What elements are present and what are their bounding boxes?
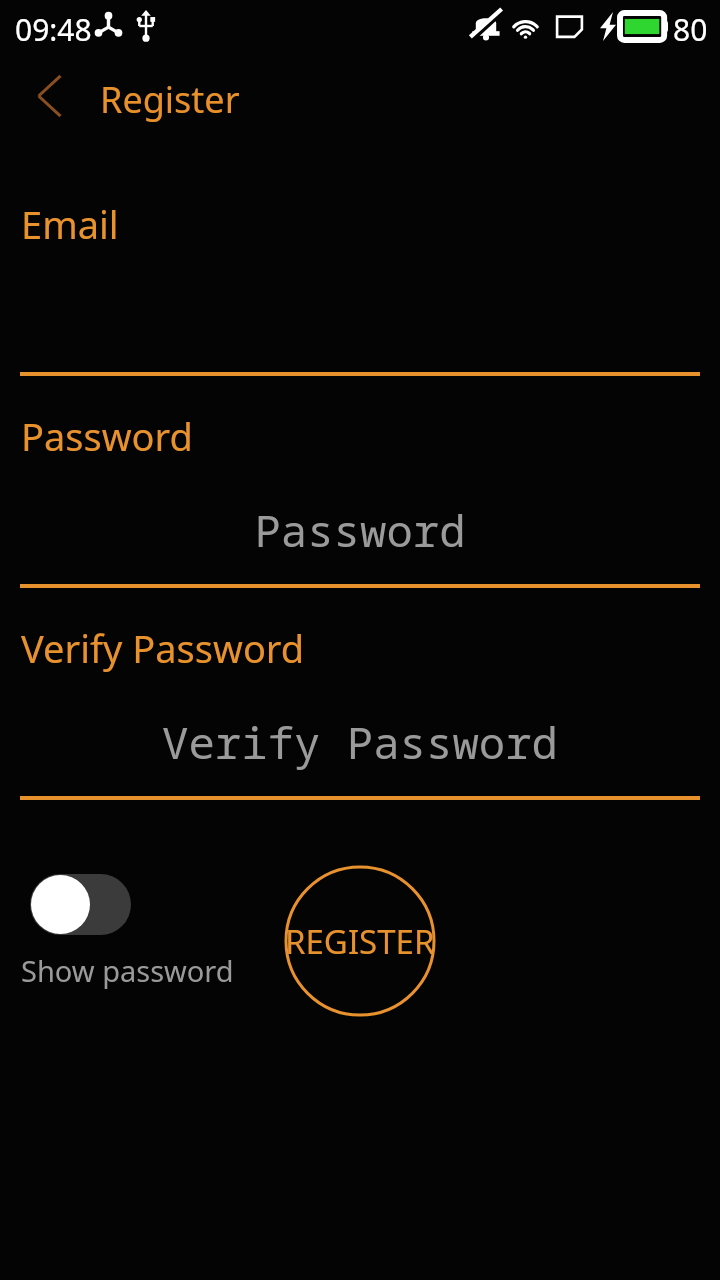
- staticText: 80: [673, 9, 708, 50]
- button[interactable]: Back: [22, 68, 78, 124]
- staticText: Verify Password: [21, 622, 305, 674]
- staticText: Password: [21, 410, 193, 462]
- staticText: Register: [100, 75, 240, 124]
- staticText: Email: [21, 198, 119, 250]
- staticText: 09:48: [15, 9, 92, 50]
- staticText: Password: [0, 500, 720, 560]
- staticText: REGISTER: [285, 919, 435, 964]
- button[interactable]: Show password toggle: [20, 864, 140, 944]
- button[interactable]: REGISTER: [284, 865, 436, 1017]
- staticText: Verify Password: [0, 712, 720, 772]
- staticText: Show password: [21, 951, 234, 990]
